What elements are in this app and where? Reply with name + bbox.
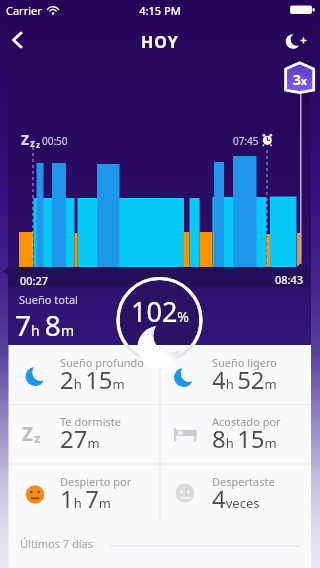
staticText: 7h 8m xyxy=(15,306,74,344)
staticText: 4h 52m xyxy=(212,363,277,396)
button[interactable] xyxy=(8,464,160,521)
staticText: Te dormiste xyxy=(60,414,121,429)
staticText: 8h 15m xyxy=(212,422,277,455)
staticText: 27m xyxy=(60,422,100,455)
staticText: Z xyxy=(22,421,34,447)
staticText: Despierto por xyxy=(60,474,132,489)
staticText: 1h 7m xyxy=(60,482,112,515)
button[interactable] xyxy=(160,404,311,464)
staticText: z xyxy=(36,139,40,150)
staticText: 08:43 xyxy=(275,272,304,287)
button[interactable] xyxy=(8,524,311,568)
staticText: Z xyxy=(21,130,30,149)
button[interactable] xyxy=(280,30,312,54)
staticText: Despertaste xyxy=(212,474,275,489)
staticText: z xyxy=(30,136,35,150)
staticText: 4:15 PM xyxy=(0,3,320,18)
staticText: Últimos 7 días xyxy=(20,536,93,551)
staticText: 4veces xyxy=(212,482,260,515)
button[interactable] xyxy=(283,60,317,96)
staticText: 00:27 xyxy=(20,273,49,288)
staticText: Sueño total xyxy=(19,292,78,307)
button[interactable] xyxy=(6,28,34,52)
staticText: 00:50 xyxy=(42,134,68,148)
staticText: 07:45 xyxy=(233,134,259,148)
staticText: Sueño profundo xyxy=(60,355,144,370)
staticText: Acostado por xyxy=(212,414,281,429)
staticText: Sueño ligero xyxy=(212,355,277,370)
button[interactable] xyxy=(160,345,311,404)
button[interactable] xyxy=(160,464,311,521)
button[interactable] xyxy=(8,404,160,464)
staticText: 102% xyxy=(0,293,320,330)
staticText: 3x xyxy=(293,70,307,89)
staticText: z xyxy=(34,429,41,447)
button[interactable] xyxy=(8,345,160,404)
staticText: 2h 15m xyxy=(60,363,125,396)
staticText: Carrier xyxy=(6,3,42,18)
staticText: HOY xyxy=(0,31,320,53)
